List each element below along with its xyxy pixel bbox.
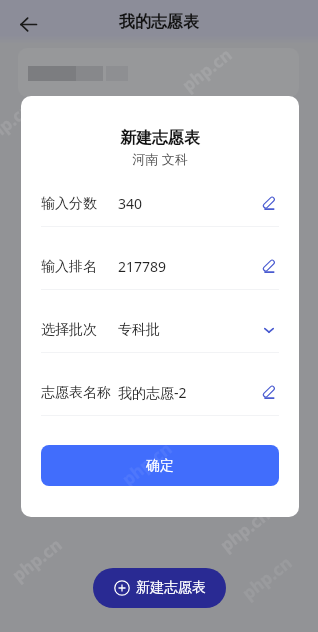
button[interactable]: 选择批次 [41,290,279,353]
staticText: php.cn [177,43,237,96]
staticText: 选择批次 [41,321,97,339]
button[interactable]: 新建志愿表 [93,568,226,608]
staticText: 输入排名 [41,258,97,276]
staticText: 新建志愿表 [21,128,299,148]
staticText: 志愿表名称 [41,384,111,402]
staticText: php.cn [0,97,37,150]
button[interactable]: 确定 [41,445,279,486]
staticText: 专科批 [118,321,160,339]
staticText: php.cn [7,533,67,586]
button[interactable]: 输入分数 [41,164,279,227]
staticText: 217789 [118,257,167,276]
staticText: 新建志愿表 [136,579,206,597]
staticText: 河南 文科 [21,150,299,168]
staticText: 输入分数 [41,195,97,213]
button[interactable]: 输入排名 [41,227,279,290]
button[interactable]: Back [0,0,56,44]
staticText: php.cn [117,437,177,490]
button[interactable]: 志愿表名称 [41,353,279,416]
staticText: 340 [118,194,143,213]
staticText: php.cn [215,503,275,556]
staticText: 我的志愿-2 [118,383,187,402]
staticText: 确定 [146,457,174,475]
staticText: 我的志愿表 [119,12,199,32]
